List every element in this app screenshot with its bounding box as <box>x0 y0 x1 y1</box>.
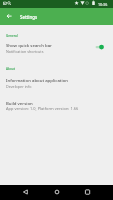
staticText: Notification shortcuts <box>6 49 44 54</box>
button[interactable]: Back <box>0 185 38 200</box>
staticText: Build version <box>6 100 33 106</box>
button[interactable]: Show quick search bar <box>0 39 113 55</box>
button[interactable]: Show quick search bar toggle <box>92 39 110 55</box>
staticText: General <box>6 34 18 38</box>
button[interactable]: Build version <box>0 97 113 113</box>
staticText: Information about application <box>6 77 68 83</box>
staticText: Developer info <box>6 84 32 89</box>
button[interactable]: Recent apps <box>75 185 113 200</box>
button[interactable]: Information about application <box>0 74 113 90</box>
staticText: About <box>6 67 15 71</box>
button[interactable]: Home <box>38 185 75 200</box>
staticText: Settings <box>20 14 38 20</box>
staticText: Show quick search bar <box>6 42 52 48</box>
staticText: App version: 1.0, Platform version: 1.66 <box>6 106 79 111</box>
button[interactable]: Navigate up <box>1 10 15 24</box>
staticText: 10:36 <box>98 2 108 7</box>
